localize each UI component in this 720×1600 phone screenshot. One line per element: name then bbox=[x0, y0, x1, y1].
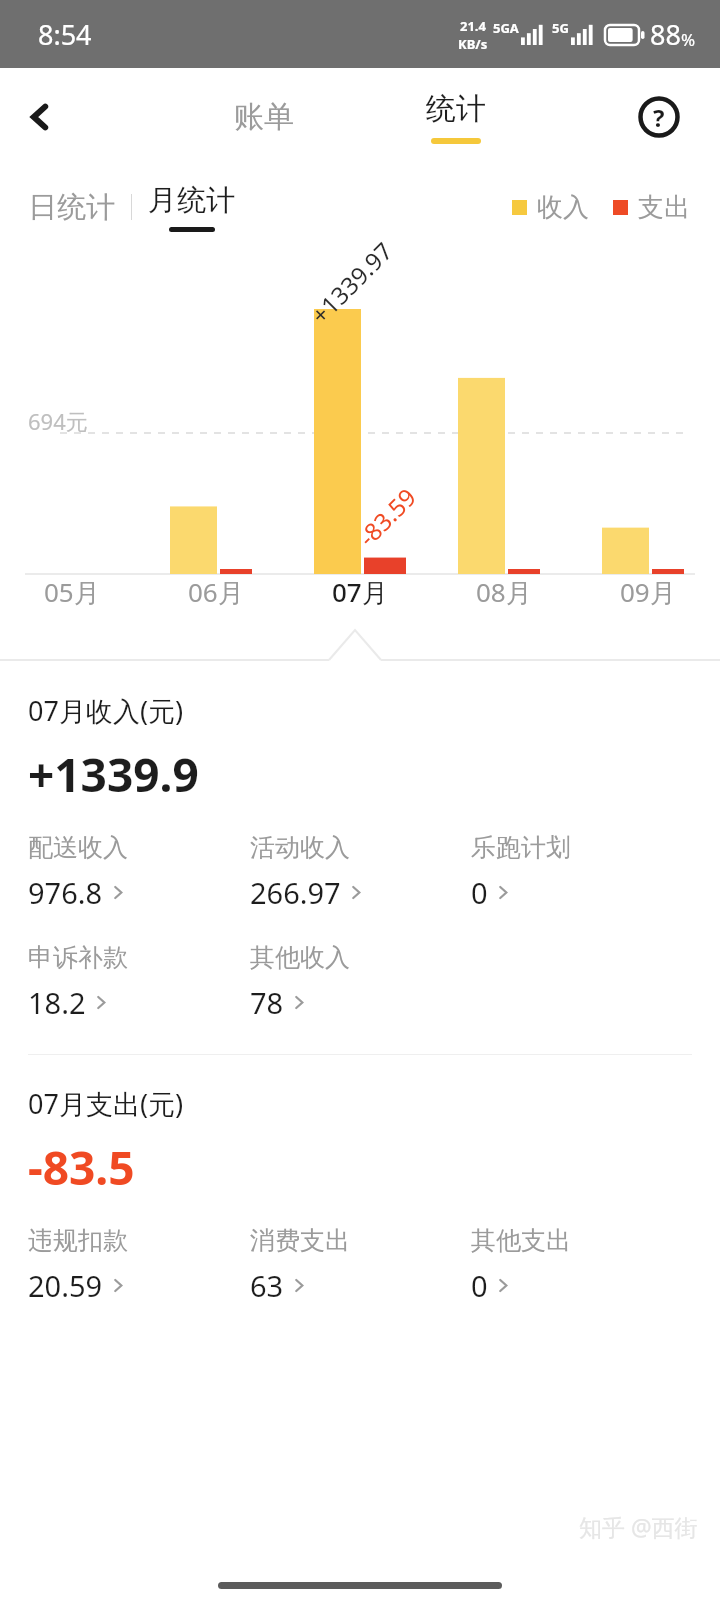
button[interactable]: 其他支出 bbox=[471, 1225, 571, 1305]
button[interactable]: 日统计 bbox=[28, 183, 115, 232]
staticText: 违规扣款 bbox=[28, 1225, 128, 1256]
staticText: 18.2 bbox=[28, 983, 86, 1022]
staticText: 07月支出(元) bbox=[28, 1085, 184, 1122]
button[interactable]: 07月 bbox=[288, 574, 432, 610]
staticText: 消费支出 bbox=[250, 1225, 350, 1256]
button[interactable]: 08月 bbox=[432, 574, 576, 610]
staticText: 88 bbox=[650, 16, 681, 53]
staticText: -83.5 bbox=[28, 1136, 135, 1199]
staticText: +1339.9 bbox=[28, 743, 199, 806]
button[interactable]: 违规扣款 bbox=[28, 1225, 128, 1305]
button[interactable]: 09月 bbox=[576, 574, 720, 610]
staticText: 账单 bbox=[234, 98, 294, 136]
staticText: 976.8 bbox=[28, 873, 103, 912]
staticText: 5G bbox=[552, 19, 569, 37]
button[interactable]: 06月 bbox=[144, 574, 288, 610]
staticText: +1339.97 bbox=[303, 234, 400, 331]
staticText: ? bbox=[653, 101, 665, 134]
staticText: 78 bbox=[250, 983, 284, 1022]
staticText: 乐跑计划 bbox=[471, 832, 571, 863]
staticText: 08月 bbox=[476, 574, 532, 610]
staticText: 07月 bbox=[332, 574, 388, 610]
staticText: 日统计 bbox=[28, 189, 115, 226]
staticText: 支出 bbox=[638, 191, 690, 224]
button[interactable]: 活动收入 bbox=[250, 832, 363, 912]
button[interactable]: Back bbox=[12, 89, 68, 145]
staticText: 知乎 @西街 bbox=[579, 1511, 698, 1542]
staticText: -83.59 bbox=[351, 480, 423, 553]
button[interactable]: 乐跑计划 bbox=[471, 832, 571, 912]
staticText: 266.97 bbox=[250, 873, 341, 912]
button[interactable]: 配送收入 bbox=[28, 832, 128, 912]
staticText: 21.4 bbox=[460, 17, 486, 35]
staticText: KB/s bbox=[458, 35, 488, 53]
staticText: 20.59 bbox=[28, 1266, 103, 1305]
staticText: 配送收入 bbox=[28, 832, 128, 863]
button[interactable]: 申诉补款 bbox=[28, 942, 128, 1022]
staticText: 收入 bbox=[537, 191, 589, 224]
button[interactable]: 月统计 bbox=[148, 182, 235, 232]
staticText: 0 bbox=[471, 873, 488, 912]
staticText: 06月 bbox=[188, 574, 244, 610]
staticText: 0 bbox=[471, 1266, 488, 1305]
staticText: 694元 bbox=[28, 406, 88, 436]
staticText: 63 bbox=[250, 1266, 284, 1305]
button[interactable]: 消费支出 bbox=[250, 1225, 350, 1305]
staticText: 09月 bbox=[620, 574, 676, 610]
staticText: % bbox=[681, 28, 696, 51]
staticText: 统计 bbox=[426, 90, 486, 128]
staticText: 其他支出 bbox=[471, 1225, 571, 1256]
staticText: 05月 bbox=[44, 574, 100, 610]
button[interactable]: 统计 bbox=[406, 90, 506, 144]
staticText: 8:54 bbox=[38, 16, 92, 53]
button[interactable]: 其他收入 bbox=[250, 942, 350, 1022]
staticText: 月统计 bbox=[148, 182, 235, 219]
button[interactable]: 账单 bbox=[234, 98, 294, 136]
staticText: 07月收入(元) bbox=[28, 692, 184, 729]
staticText: 活动收入 bbox=[250, 832, 350, 863]
staticText: 5GA bbox=[493, 19, 519, 37]
staticText: 其他收入 bbox=[250, 942, 350, 973]
button[interactable]: 05月 bbox=[0, 574, 144, 610]
staticText: 申诉补款 bbox=[28, 942, 128, 973]
button[interactable]: Help bbox=[634, 92, 684, 142]
